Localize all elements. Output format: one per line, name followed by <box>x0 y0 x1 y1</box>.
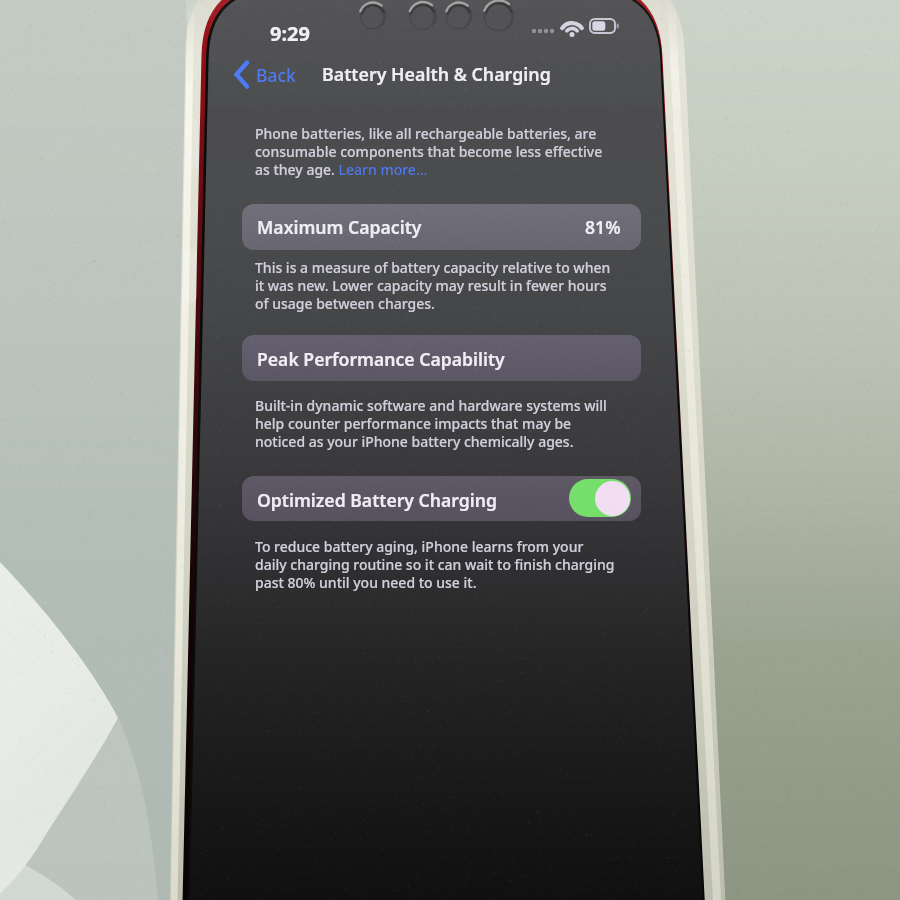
staticText: Built-in dynamic software and hardware s… <box>255 396 607 451</box>
button[interactable]: Peak Performance Capability <box>242 335 641 381</box>
button[interactable]: Optimized Battery Charging, on <box>569 479 631 517</box>
staticText: This is a measure of battery capacity re… <box>255 258 611 313</box>
button[interactable]: Maximum Capacity <box>242 204 641 250</box>
staticText: Peak Performance Capability <box>257 347 505 371</box>
staticText: To reduce battery aging, iPhone learns f… <box>255 537 615 592</box>
staticText: Back <box>256 63 296 87</box>
button[interactable]: Back <box>229 59 291 90</box>
staticText: Battery Health & Charging <box>322 62 551 86</box>
staticText: 81% <box>585 215 621 239</box>
staticText: Phone batteries, like all rechargeable b… <box>255 124 603 179</box>
staticText: Maximum Capacity <box>257 215 422 239</box>
staticText: 9:29 <box>270 20 310 47</box>
button[interactable]: Optimized Battery Charging <box>242 476 641 521</box>
staticText: Optimized Battery Charging <box>257 488 497 512</box>
